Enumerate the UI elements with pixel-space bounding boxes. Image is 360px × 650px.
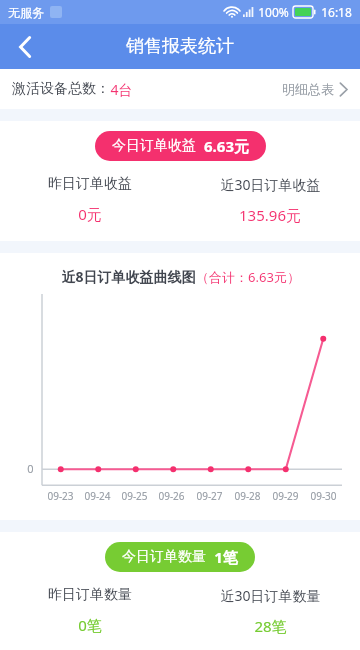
staticText: 09-30 (310, 489, 337, 503)
staticText: 0元 (78, 204, 102, 224)
staticText: 4台 (110, 80, 133, 99)
staticText: （合计：6.63元） (196, 268, 300, 286)
staticText: 09-26 (158, 489, 185, 503)
button[interactable]: Back (0, 24, 50, 69)
button[interactable]: 昨日订单收益 (0, 175, 180, 224)
staticText: 近30日订单收益 (220, 175, 321, 194)
staticText: 135.96元 (239, 205, 301, 225)
button[interactable]: 近30日订单数量 (180, 586, 360, 634)
staticText: 09-24 (84, 489, 111, 503)
staticText: 100% (258, 4, 289, 20)
button[interactable]: 昨日订单数量 (0, 586, 180, 634)
staticText: 明细总表 (282, 81, 334, 97)
staticText: 0笔 (78, 615, 102, 634)
staticText: 无服务 (8, 5, 44, 20)
button[interactable]: 激活设备总数： (0, 69, 360, 109)
staticText: 激活设备总数： (12, 80, 110, 98)
staticText: 09-25 (121, 489, 148, 503)
staticText: 09-29 (272, 489, 299, 503)
staticText: 销售报表统计 (126, 35, 234, 58)
staticText: 近30日订单数量 (220, 586, 321, 605)
staticText: 16:18 (321, 4, 352, 20)
staticText: 09-27 (196, 489, 223, 503)
staticText: 09-28 (234, 489, 261, 503)
staticText: 6.63元 (204, 136, 249, 156)
button[interactable]: 近30日订单收益 (180, 175, 360, 225)
staticText: 1笔 (214, 547, 238, 567)
button[interactable]: 今日订单数量 (105, 542, 255, 572)
staticText: 09-23 (47, 489, 74, 503)
staticText: 昨日订单收益 (48, 175, 132, 193)
staticText: 28笔 (254, 616, 287, 634)
staticText: 今日订单数量 (122, 548, 206, 566)
staticText: 0 (27, 461, 34, 476)
staticText: 昨日订单数量 (48, 586, 132, 604)
staticText: 今日订单收益 (112, 137, 196, 155)
button[interactable]: 今日订单收益 (95, 131, 266, 161)
staticText: 近8日订单收益曲线图 (61, 267, 196, 286)
